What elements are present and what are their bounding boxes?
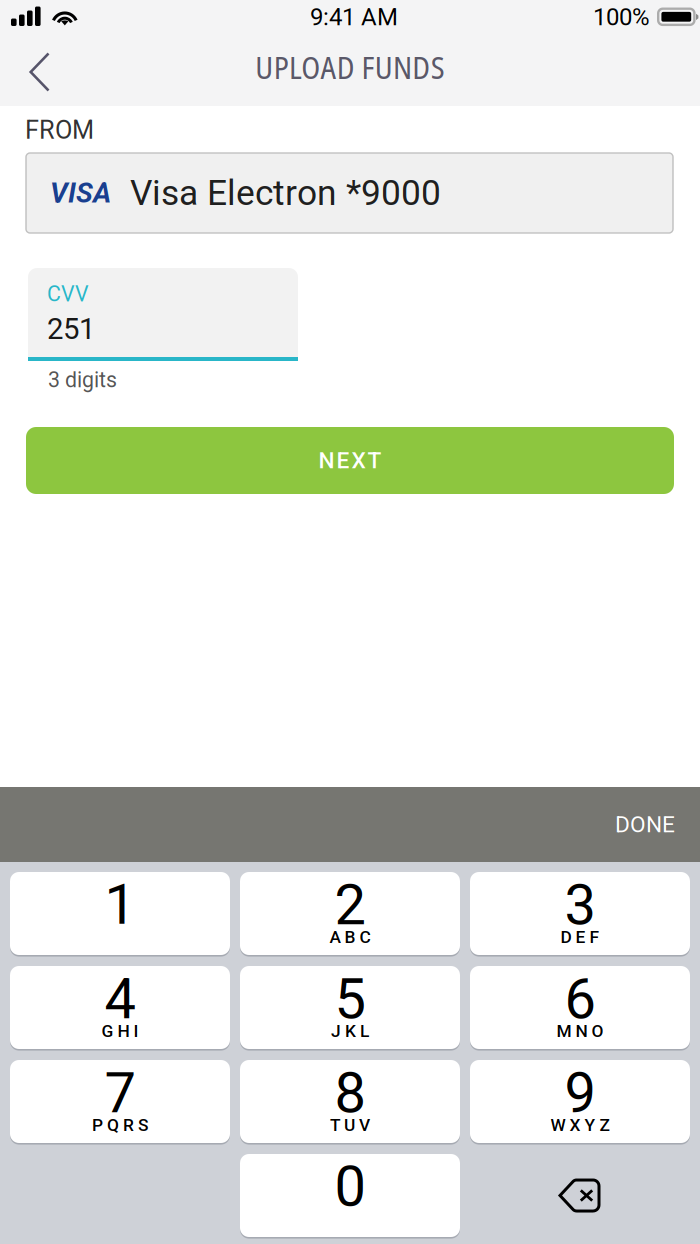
staticText: 7 (104, 1060, 135, 1126)
staticText: D E F (560, 927, 599, 947)
staticText: A B C (329, 927, 370, 947)
staticText: UPLOAD FUNDS (255, 46, 445, 88)
staticText: G H I (101, 1021, 138, 1041)
staticText: 100% (593, 3, 650, 31)
staticText: 0 (334, 1154, 365, 1219)
button[interactable]: NEXT (26, 427, 674, 494)
staticText: 1 (104, 872, 135, 937)
staticText: W X Y Z (550, 1115, 609, 1135)
staticText: CVV (47, 281, 89, 306)
button[interactable]: 2 (240, 872, 460, 955)
button[interactable]: VISA (26, 153, 673, 233)
staticText: 2 (334, 872, 365, 938)
staticText: 251 (47, 312, 95, 346)
staticText: 5 (334, 966, 365, 1032)
button[interactable]: 0 (240, 1154, 460, 1237)
button[interactable]: DONE (555, 792, 700, 856)
staticText: 9 (564, 1060, 595, 1126)
staticText: VISA (50, 177, 111, 209)
staticText: FROM (25, 115, 94, 145)
staticText: 3 (564, 872, 595, 938)
staticText: DONE (615, 811, 675, 838)
button[interactable]: 8 (240, 1060, 460, 1143)
staticText: 4 (104, 966, 135, 1032)
button[interactable]: 4 (10, 966, 230, 1049)
staticText: M N O (556, 1021, 603, 1041)
staticText: 8 (334, 1060, 365, 1126)
button[interactable]: 1 (10, 872, 230, 955)
staticText: J K L (331, 1021, 369, 1041)
staticText: NEXT (318, 447, 381, 474)
staticText: 6 (564, 966, 595, 1032)
staticText: 9:41 AM (310, 3, 398, 31)
button[interactable]: Delete (470, 1154, 690, 1237)
staticText: P Q R S (92, 1115, 148, 1135)
staticText: 3 digits (48, 367, 117, 392)
button[interactable]: 5 (240, 966, 460, 1049)
staticText: T U V (330, 1115, 370, 1135)
button[interactable]: 6 (470, 966, 690, 1049)
staticText: Visa Electron *9000 (130, 172, 441, 214)
button[interactable]: 3 (470, 872, 690, 955)
button[interactable]: 7 (10, 1060, 230, 1143)
button[interactable]: Back (2, 40, 78, 104)
button[interactable]: 9 (470, 1060, 690, 1143)
